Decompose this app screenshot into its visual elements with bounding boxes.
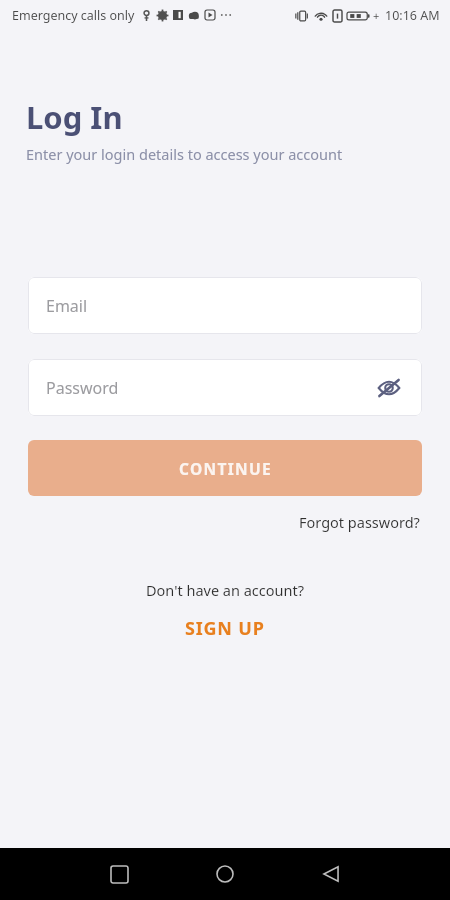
button[interactable]: Forgot password?	[295, 508, 424, 536]
staticText: Emergency calls only	[12, 7, 135, 24]
button[interactable]: Password	[28, 359, 422, 416]
button[interactable]: Show password	[372, 371, 406, 405]
staticText: +	[373, 8, 380, 23]
button[interactable]: SIGN UP	[177, 614, 273, 643]
button[interactable]: CONTINUE	[28, 440, 422, 496]
staticText: Forgot password?	[299, 512, 420, 532]
button[interactable]: Email	[28, 277, 422, 334]
button[interactable]: Home	[193, 848, 257, 900]
staticText: Don't have an account?	[146, 580, 304, 600]
staticText: 10:16 AM	[385, 7, 440, 24]
button[interactable]: Back	[299, 848, 363, 900]
staticText: Log In	[26, 96, 123, 138]
staticText: Email	[46, 295, 88, 317]
staticText: SIGN UP	[185, 616, 265, 641]
staticText: CONTINUE	[179, 458, 272, 479]
staticText: Password	[46, 377, 119, 399]
staticText: Enter your login details to access your …	[26, 144, 343, 164]
button[interactable]: Recents	[87, 848, 151, 900]
